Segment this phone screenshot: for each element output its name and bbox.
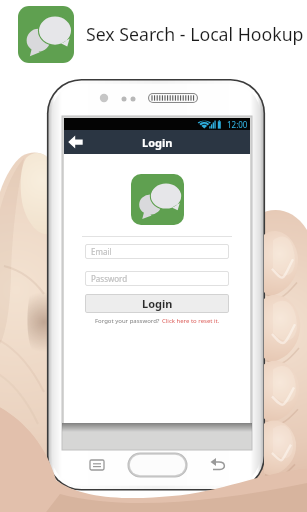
staticText: Sex Search - Local Hookup bbox=[86, 22, 304, 46]
button[interactable]: Email bbox=[85, 244, 229, 259]
button[interactable]: Password bbox=[85, 271, 229, 286]
button[interactable]: Click here to reset it. bbox=[162, 317, 220, 325]
staticText: Login bbox=[142, 296, 173, 311]
staticText: Login bbox=[142, 135, 173, 150]
button[interactable]: Login bbox=[85, 294, 229, 313]
staticText: 12:00 bbox=[227, 119, 248, 130]
button[interactable]: Back bbox=[64, 130, 90, 154]
staticText: Forgot your password? bbox=[95, 317, 162, 325]
staticText: Email bbox=[91, 246, 112, 257]
button[interactable]: Sex Search app icon bbox=[18, 6, 74, 63]
staticText: Password bbox=[91, 273, 128, 284]
